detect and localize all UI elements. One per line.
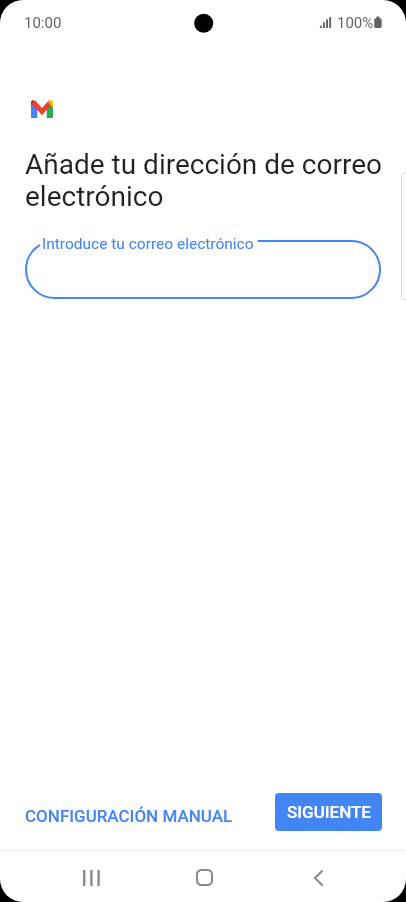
staticText: CONFIGURACIÓN MANUAL — [25, 806, 233, 826]
button[interactable]: Recent apps — [64, 852, 118, 902]
staticText: Añade tu dirección de correo electrónico — [25, 148, 384, 213]
staticText: Introduce tu correo electrónico — [42, 235, 254, 253]
button[interactable]: Back — [291, 852, 345, 902]
staticText: SIGUIENTE — [287, 802, 371, 822]
button[interactable]: SIGUIENTE — [275, 793, 382, 831]
button[interactable]: Home — [177, 852, 231, 902]
staticText: 100% — [337, 14, 374, 32]
button[interactable]: CONFIGURACIÓN MANUAL — [14, 798, 244, 834]
staticText: 10:00 — [24, 14, 62, 32]
button[interactable]: Introduce tu correo electrónico — [25, 240, 381, 299]
